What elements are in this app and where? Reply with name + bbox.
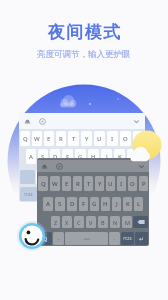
- button[interactable]: F: [79, 197, 88, 211]
- button[interactable]: Q: [20, 131, 30, 146]
- staticText: H: [91, 153, 96, 161]
- staticText: Y: [98, 180, 102, 188]
- button[interactable]: Z: [51, 216, 60, 228]
- staticText: P: [142, 180, 146, 188]
- staticText: S: [41, 153, 45, 161]
- staticText: ↵: [139, 235, 145, 242]
- button[interactable]: ,: [53, 232, 64, 245]
- button[interactable]: H: [88, 149, 99, 164]
- staticText: M: [125, 219, 130, 226]
- button[interactable]: W: [50, 176, 60, 191]
- staticText: A: [46, 200, 50, 208]
- button[interactable]: L: [127, 149, 138, 164]
- button[interactable]: N: [104, 170, 115, 184]
- staticText: N: [107, 173, 112, 181]
- button[interactable]: F: [62, 149, 73, 164]
- button[interactable]: Y: [81, 131, 92, 146]
- button[interactable]: X: [50, 170, 62, 184]
- staticText: K: [126, 200, 130, 208]
- button[interactable]: J: [112, 197, 121, 211]
- button[interactable]: Enter: [127, 187, 144, 201]
- button[interactable]: D: [50, 149, 60, 164]
- button[interactable]: O: [120, 131, 131, 146]
- staticText: ,: [58, 235, 60, 242]
- button[interactable]: Y: [95, 176, 104, 191]
- button[interactable]: T: [84, 176, 93, 191]
- staticText: B: [95, 173, 99, 181]
- staticText: Q: [43, 235, 48, 242]
- button[interactable]: Backspace: [133, 216, 148, 228]
- button[interactable]: B: [98, 216, 108, 228]
- staticText: X: [65, 219, 69, 226]
- button[interactable]: C: [74, 216, 84, 228]
- staticText: O: [123, 135, 128, 143]
- button[interactable]: E: [62, 176, 71, 191]
- button[interactable]: O: [128, 176, 137, 191]
- button[interactable]: V: [78, 170, 89, 184]
- button[interactable]: E: [44, 131, 54, 146]
- button[interactable]: ?123: [20, 187, 37, 201]
- button[interactable]: X: [62, 216, 72, 228]
- button[interactable]: B: [91, 170, 102, 184]
- button[interactable]: A: [26, 149, 36, 164]
- staticText: J: [106, 153, 108, 161]
- button[interactable]: P: [133, 131, 144, 146]
- staticText: I: [120, 180, 123, 188]
- button[interactable]: C: [64, 170, 76, 184]
- staticText: T: [87, 180, 91, 188]
- button[interactable]: G: [75, 149, 86, 164]
- button[interactable]: M: [117, 170, 128, 184]
- staticText: C: [77, 219, 81, 226]
- button[interactable]: S: [38, 149, 48, 164]
- button[interactable]: A: [43, 197, 53, 211]
- staticText: K: [118, 153, 122, 161]
- staticText: J: [116, 200, 118, 208]
- staticText: F: [66, 153, 70, 161]
- button[interactable]: P: [139, 176, 148, 191]
- staticText: 夜间模式: [47, 22, 121, 43]
- button[interactable]: L: [134, 197, 143, 211]
- staticText: U: [108, 180, 113, 188]
- button[interactable]: R: [56, 131, 66, 146]
- staticText: L: [131, 153, 135, 161]
- button[interactable]: Enter: [135, 232, 148, 245]
- staticText: Y: [85, 135, 89, 143]
- button[interactable]: Backspace: [129, 170, 144, 184]
- button[interactable]: V: [86, 216, 96, 228]
- button[interactable]: K: [114, 149, 125, 164]
- button[interactable]: I: [117, 176, 126, 191]
- button[interactable]: J: [101, 149, 112, 164]
- staticText: ?123: [123, 236, 132, 241]
- button[interactable]: G: [90, 197, 99, 211]
- button[interactable]: S: [55, 197, 65, 211]
- staticText: A: [29, 153, 33, 161]
- button[interactable]: R: [73, 176, 82, 191]
- staticText: W: [34, 135, 40, 143]
- button[interactable]: U: [94, 131, 105, 146]
- staticText: W: [52, 180, 58, 188]
- staticText: E: [47, 135, 51, 143]
- staticText: G: [92, 200, 97, 208]
- staticText: E: [65, 180, 69, 188]
- button[interactable]: M: [122, 216, 132, 228]
- button[interactable]: D: [67, 197, 77, 211]
- button[interactable]: Emoji: [17, 221, 47, 251]
- button[interactable]: I: [107, 131, 118, 146]
- button[interactable]: Search: [38, 232, 52, 245]
- staticText: D: [70, 200, 75, 208]
- button[interactable]: W: [32, 131, 42, 146]
- button[interactable]: Q: [38, 176, 48, 191]
- button[interactable]: Z: [36, 170, 48, 184]
- staticText: Z: [40, 173, 44, 181]
- button[interactable]: T: [68, 131, 79, 146]
- button[interactable]: .: [109, 232, 120, 245]
- button[interactable]: Space: [65, 232, 108, 245]
- button[interactable]: ?123: [121, 232, 134, 245]
- button[interactable]: H: [101, 197, 110, 211]
- button[interactable]: N: [110, 216, 120, 228]
- button[interactable]: U: [106, 176, 115, 191]
- staticText: I: [111, 135, 114, 143]
- button[interactable]: Space: [38, 187, 126, 201]
- button[interactable]: K: [123, 197, 132, 211]
